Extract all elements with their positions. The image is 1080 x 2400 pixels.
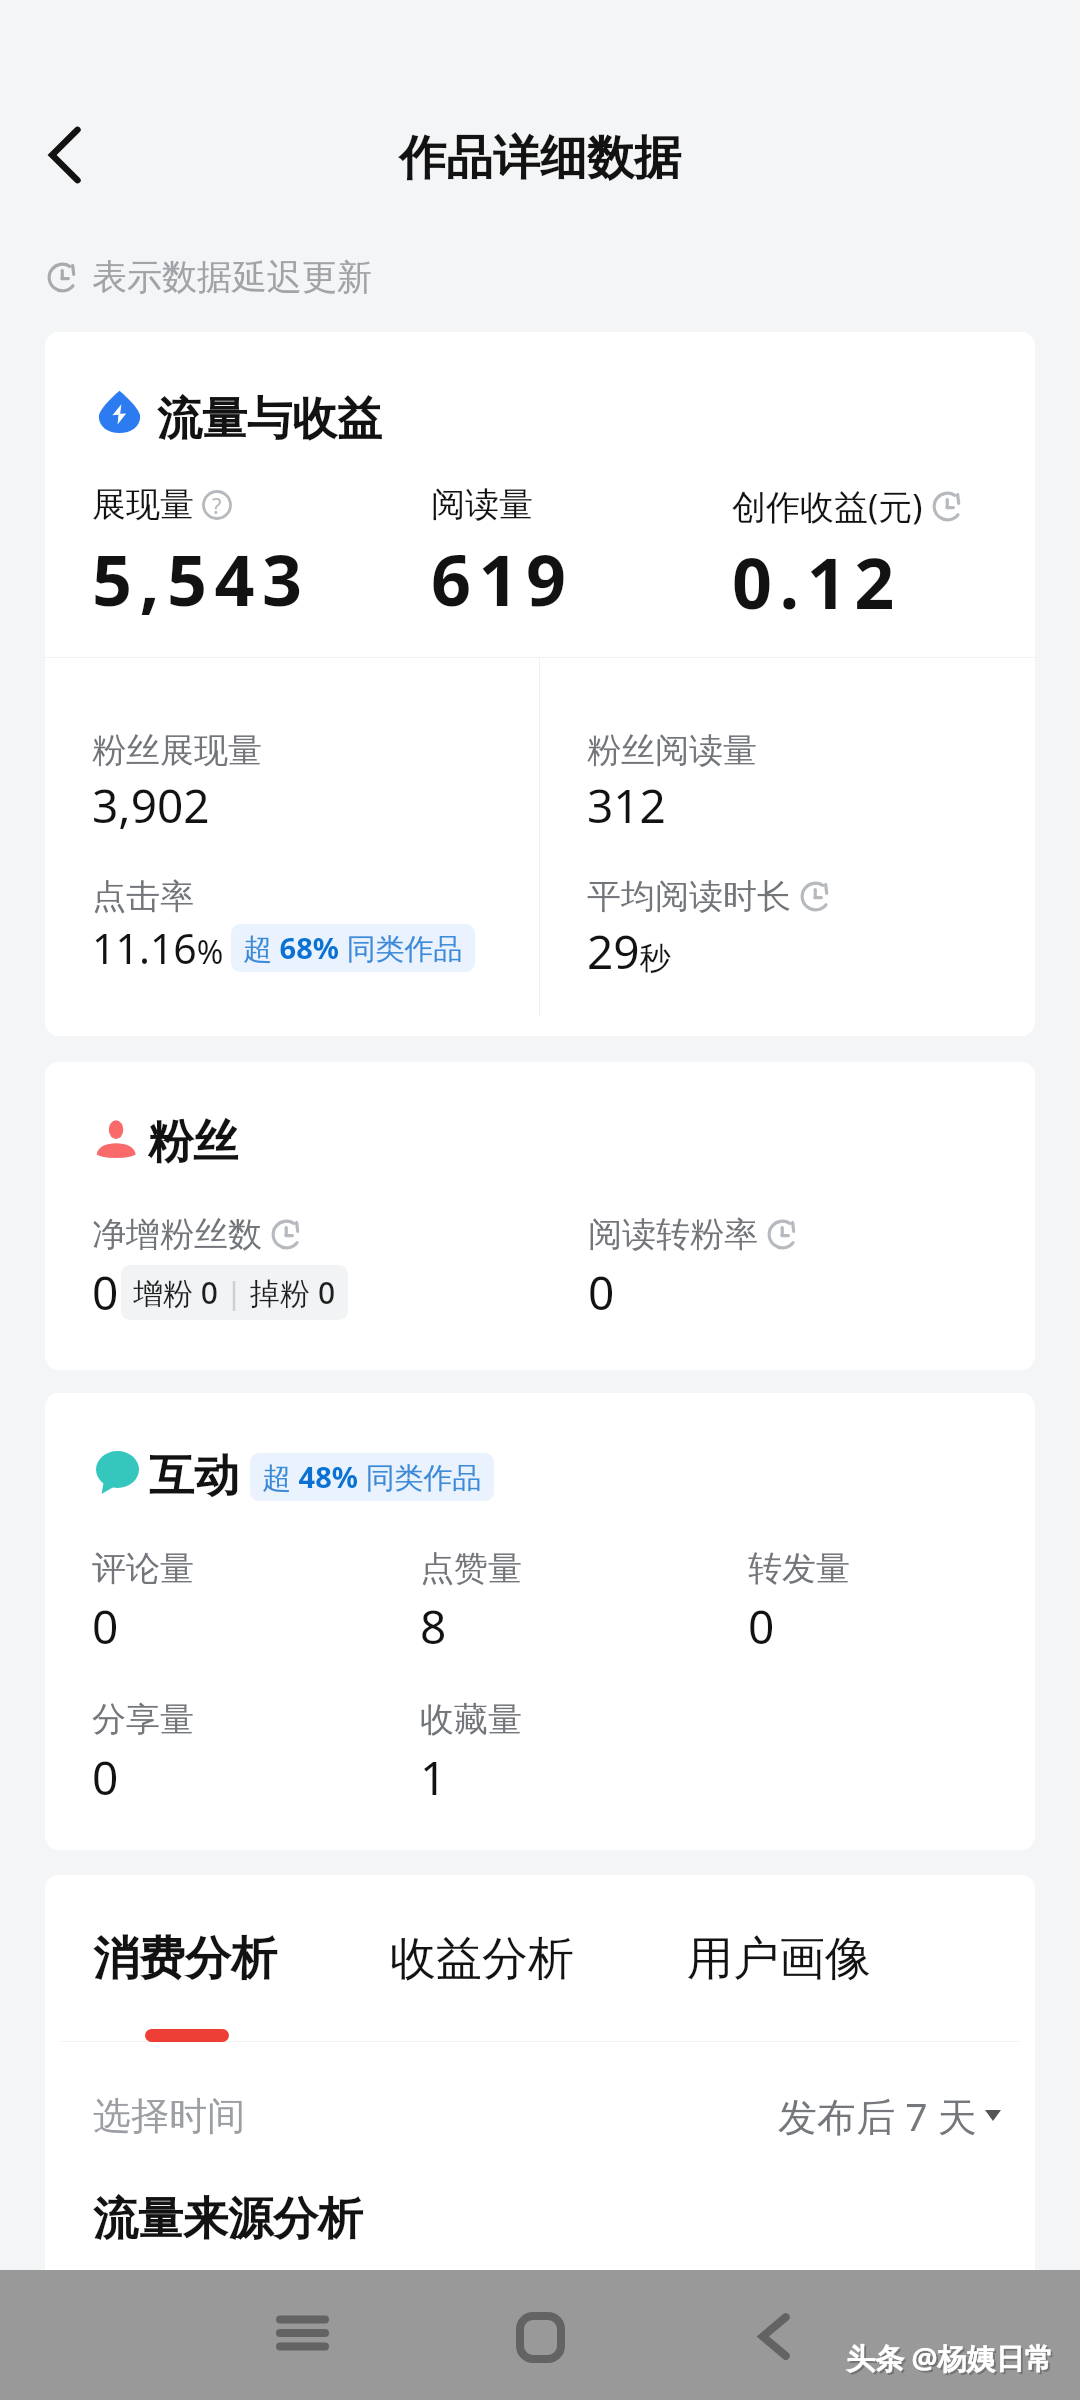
- staticText: 超 68% 同类作品: [243, 928, 463, 968]
- staticText: 点击率: [92, 875, 194, 918]
- staticText: 净增粉丝数: [92, 1213, 262, 1256]
- staticText: 流量来源分析: [93, 2191, 363, 2248]
- staticText: 发布后 7 天: [778, 2089, 977, 2142]
- button[interactable]: Home: [490, 2304, 590, 2370]
- staticText: 0: [588, 1261, 615, 1324]
- staticText: 创作收益(元): [732, 483, 923, 529]
- staticText: 0: [92, 1261, 119, 1324]
- staticText: 分享量: [92, 1698, 194, 1741]
- staticText: 消费分析: [93, 1930, 277, 1988]
- button[interactable]: 收益分析: [390, 1930, 574, 1988]
- staticText: 选择时间: [93, 2092, 245, 2140]
- staticText: 收藏量: [420, 1698, 522, 1741]
- staticText: 展现量: [92, 483, 194, 526]
- staticText: ?: [212, 491, 222, 520]
- staticText: 阅读转粉率: [588, 1213, 758, 1256]
- staticText: 1: [420, 1746, 447, 1809]
- button[interactable]: Back: [30, 121, 98, 189]
- staticText: 0: [92, 1746, 119, 1809]
- staticText: 表示数据延迟更新: [92, 255, 372, 299]
- staticText: 平均阅读时长: [587, 875, 791, 918]
- button[interactable]: 选择时间: [93, 2089, 1001, 2142]
- staticText: 头条 @杨姨日常: [848, 2340, 1056, 2380]
- staticText: 619: [431, 531, 574, 626]
- button[interactable]: 消费分析: [93, 1930, 277, 1988]
- staticText: 超 48% 同类作品: [262, 1457, 482, 1497]
- staticText: 5,543: [92, 531, 310, 626]
- staticText: 点赞量: [420, 1547, 522, 1590]
- button[interactable]: Back: [724, 2303, 824, 2369]
- staticText: 作品详细数据: [399, 129, 681, 188]
- staticText: 0: [748, 1595, 775, 1658]
- staticText: 粉丝: [148, 1114, 238, 1171]
- staticText: 312: [587, 774, 666, 837]
- staticText: 评论量: [92, 1547, 194, 1590]
- staticText: 粉丝阅读量: [587, 729, 757, 772]
- button[interactable]: Recent apps: [252, 2300, 352, 2366]
- staticText: 11.16%: [92, 920, 224, 976]
- staticText: 29秒: [587, 920, 671, 983]
- staticText: 流量与收益: [157, 391, 382, 448]
- staticText: 阅读量: [431, 483, 533, 526]
- staticText: 8: [420, 1595, 447, 1658]
- button[interactable]: 用户画像: [687, 1930, 871, 1988]
- staticText: 转发量: [748, 1547, 850, 1590]
- staticText: 粉丝展现量: [92, 729, 262, 772]
- staticText: 3,902: [92, 774, 210, 837]
- staticText: 头条 @杨姨日常: [846, 2338, 1054, 2378]
- staticText: 0: [92, 1595, 119, 1658]
- staticText: 0.12: [732, 534, 902, 629]
- staticText: 增粉 0 | 掉粉 0: [133, 1272, 336, 1313]
- staticText: 互动: [149, 1448, 239, 1505]
